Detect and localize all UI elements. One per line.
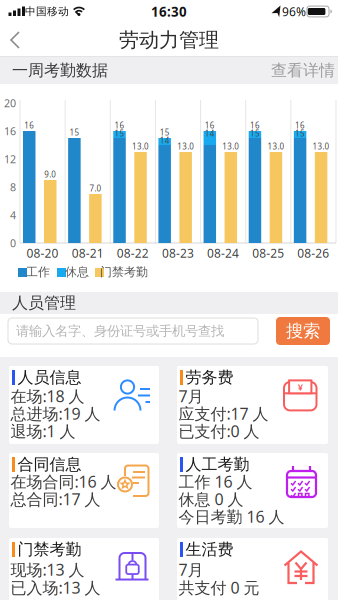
staticText: 96% [282, 3, 306, 19]
staticText: 13.0 [313, 141, 330, 152]
staticText: ¥ [298, 381, 303, 393]
staticText: 合同信息 [17, 455, 81, 474]
staticText: 一周考勤数据 [12, 61, 108, 80]
staticText: 工作 16 人 [178, 471, 252, 492]
staticText: 休息 0 人 [178, 488, 243, 510]
staticText: 14 [205, 128, 215, 139]
staticText: 劳动力管理 [119, 28, 219, 52]
staticText: 08-26 [297, 245, 329, 261]
staticText: 在场:18 人 [10, 385, 84, 407]
staticText: 查看详情 [271, 61, 335, 80]
staticText: 门禁考勤 [100, 265, 148, 279]
staticText: 门禁考勤 [17, 540, 81, 559]
staticText: 共支付 0 元 [178, 577, 259, 598]
staticText: 休息 [65, 265, 89, 279]
staticText: 16 [114, 120, 124, 131]
staticText: 总合同:17 人 [10, 488, 100, 510]
staticText: 15 [295, 128, 305, 139]
staticText: 14 [160, 135, 170, 146]
button[interactable]: 生活费 [177, 538, 328, 600]
staticText: 13.0 [132, 141, 149, 152]
staticText: 9.0 [44, 169, 56, 180]
staticText: 搜索 [286, 320, 320, 342]
staticText: 应支付:17 人 [178, 403, 268, 424]
staticText: 16 [24, 120, 34, 131]
staticText: 7月 [178, 385, 203, 407]
staticText: 16 [295, 120, 305, 131]
staticText: 4 [10, 208, 16, 222]
button[interactable]: 人工考勤 [177, 453, 328, 528]
staticText: 15 [114, 128, 124, 139]
staticText: 08-23 [162, 245, 194, 261]
staticText: 生活费 [185, 540, 233, 559]
staticText: 08-24 [207, 245, 239, 261]
staticText: 15 [250, 128, 260, 139]
staticText: 08-20 [26, 245, 58, 261]
staticText: 13.0 [177, 141, 194, 152]
staticText: 0 [10, 236, 16, 250]
staticText: 08-22 [117, 245, 149, 261]
staticText: 16 [4, 124, 16, 138]
staticText: 08-25 [252, 245, 284, 261]
button[interactable]: 人员信息 [9, 366, 159, 444]
staticText: 请输入名字、身份证号或手机号查找 [16, 323, 224, 339]
staticText: 7.0 [89, 183, 101, 194]
staticText: 退场:1 人 [10, 420, 75, 442]
staticText: 20 [4, 96, 16, 110]
staticText: 13.0 [222, 141, 239, 152]
staticText: 16:30 [151, 3, 187, 20]
button[interactable]: 合同信息 [9, 453, 159, 528]
staticText: 08-21 [72, 245, 104, 261]
staticText: 12 [4, 152, 16, 166]
staticText: 中国移动 [25, 5, 69, 18]
button[interactable]: 门禁考勤 [9, 538, 159, 600]
staticText: 人员管理 [12, 293, 76, 313]
staticText: 8 [10, 180, 16, 194]
staticText: 已入场:13 人 [10, 577, 100, 598]
staticText: 今日考勤 16 人 [178, 506, 284, 527]
staticText: 劳务费 [185, 368, 233, 387]
staticText: 在场合同:16 人 [10, 471, 116, 492]
staticText: 工作 [26, 265, 50, 279]
staticText: 人工考勤 [185, 455, 249, 474]
staticText: 已支付:0 人 [178, 420, 259, 442]
staticText: 16 [250, 120, 260, 131]
button[interactable]: 劳务费 [177, 366, 328, 444]
staticText: 16 [205, 120, 215, 131]
staticText: 15 [69, 127, 79, 138]
staticText: 人员信息 [17, 368, 81, 387]
staticText: 现场:13 人 [10, 559, 84, 580]
staticText: 总进场:19 人 [10, 403, 100, 424]
button[interactable]: 查看详情 [268, 57, 338, 84]
button[interactable]: 搜索 [276, 317, 330, 345]
staticText: 13.0 [267, 141, 284, 152]
button[interactable]: Back [6, 26, 30, 54]
staticText: 7月 [178, 559, 203, 580]
staticText: 15 [160, 127, 170, 138]
